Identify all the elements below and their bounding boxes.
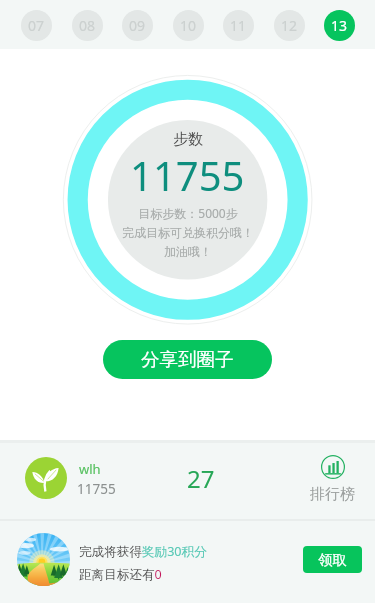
staticText: 距离目标还有0 xyxy=(79,566,162,583)
button[interactable]: wlh xyxy=(0,443,375,519)
staticText: 08 xyxy=(79,16,96,35)
staticText: 11 xyxy=(230,16,247,35)
staticText: 10 xyxy=(180,16,197,35)
staticText: 11755 xyxy=(130,148,245,202)
staticText: 07 xyxy=(28,16,45,35)
staticText: 分享到圈子 xyxy=(141,348,234,371)
button[interactable]: 13 xyxy=(324,10,355,41)
button[interactable]: 08 xyxy=(72,10,103,41)
staticText: 09 xyxy=(129,16,146,35)
staticText: 11755 xyxy=(77,480,116,498)
button[interactable]: 11 xyxy=(223,10,254,41)
staticText: 步数 xyxy=(173,130,203,149)
button[interactable]: 排行榜 xyxy=(305,455,360,519)
staticText: 排行榜 xyxy=(310,485,355,504)
staticText: 完成将获得奖励30积分 xyxy=(79,543,207,560)
button[interactable]: 领取 xyxy=(303,546,362,573)
staticText: 12 xyxy=(281,16,298,35)
button[interactable]: 09 xyxy=(122,10,153,41)
staticText: 领取 xyxy=(318,551,348,569)
staticText: wlh xyxy=(79,460,101,478)
button[interactable]: 07 xyxy=(21,10,52,41)
button[interactable]: 12 xyxy=(274,10,305,41)
button[interactable]: 10 xyxy=(173,10,204,41)
staticText: 27 xyxy=(187,462,215,495)
staticText: 13 xyxy=(331,16,348,35)
staticText: 目标步数：5000步 完成目标可兑换积分哦！ 加油哦！ xyxy=(122,205,254,260)
button[interactable]: 分享到圈子 xyxy=(103,340,272,379)
